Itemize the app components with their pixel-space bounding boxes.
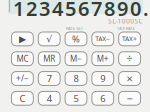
staticText: % bbox=[72, 33, 80, 45]
staticText: TAX+ bbox=[122, 34, 137, 43]
button[interactable]: M− bbox=[65, 52, 87, 66]
button[interactable]: 7 bbox=[38, 72, 60, 85]
staticText: √ bbox=[46, 34, 52, 44]
staticText: +/− bbox=[16, 73, 29, 84]
button[interactable]: C bbox=[11, 91, 33, 105]
staticText: − bbox=[127, 91, 133, 105]
staticText: RATE SET bbox=[66, 25, 83, 31]
button[interactable]: MR bbox=[38, 52, 60, 66]
staticText: 1234567890. bbox=[13, 0, 149, 22]
staticText: 9 bbox=[100, 72, 105, 85]
button[interactable]: ÷ bbox=[119, 52, 140, 66]
staticText: M+ bbox=[97, 53, 109, 64]
button[interactable]: √ bbox=[38, 32, 60, 46]
button[interactable]: − bbox=[119, 91, 140, 105]
staticText: 6 bbox=[100, 92, 105, 104]
staticText: C bbox=[19, 92, 25, 104]
button[interactable]: MC bbox=[11, 52, 33, 66]
staticText: 7 bbox=[47, 72, 52, 85]
button[interactable]: 8 bbox=[65, 72, 87, 85]
button[interactable]: 6 bbox=[92, 91, 114, 105]
staticText: TAX RATE bbox=[117, 25, 135, 31]
button[interactable]: × bbox=[119, 72, 140, 85]
staticText: TAX− bbox=[95, 34, 110, 43]
button[interactable]: 5 bbox=[65, 91, 87, 105]
button[interactable]: M+ bbox=[92, 52, 114, 66]
button[interactable]: % bbox=[65, 32, 87, 46]
button[interactable]: 9 bbox=[92, 72, 114, 85]
staticText: ÷ bbox=[127, 52, 133, 66]
staticText: M− bbox=[70, 53, 82, 64]
button[interactable]: ▶ bbox=[11, 32, 33, 46]
staticText: SL-1000SC bbox=[108, 16, 143, 25]
staticText: 4 bbox=[47, 92, 52, 104]
staticText: 8 bbox=[73, 72, 78, 85]
button[interactable]: 4 bbox=[38, 91, 60, 105]
button[interactable]: TAX− bbox=[92, 32, 114, 46]
staticText: × bbox=[127, 71, 133, 86]
button[interactable]: +/− bbox=[11, 72, 33, 85]
staticText: MR bbox=[43, 53, 55, 64]
staticText: ▶ bbox=[19, 34, 26, 44]
button[interactable]: TAX+ bbox=[119, 32, 140, 46]
staticText: 5 bbox=[73, 92, 78, 104]
staticText: MC bbox=[16, 53, 28, 64]
